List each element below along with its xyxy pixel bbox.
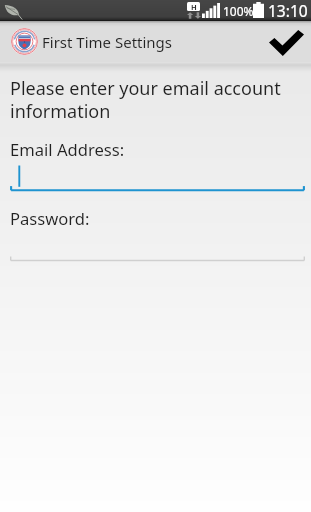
staticText: Please enter your email account informat… bbox=[10, 76, 302, 123]
button[interactable]: Done bbox=[263, 21, 311, 62]
staticText: 13:10 bbox=[268, 0, 308, 21]
staticText: H bbox=[191, 2, 197, 11]
staticText: Password: bbox=[10, 207, 90, 230]
staticText: First Time Settings bbox=[42, 32, 173, 52]
button[interactable]: Email Address field bbox=[10, 162, 305, 192]
button[interactable]: Password field bbox=[10, 233, 305, 263]
staticText: 100% bbox=[223, 3, 254, 19]
staticText: Email Address: bbox=[10, 138, 125, 161]
